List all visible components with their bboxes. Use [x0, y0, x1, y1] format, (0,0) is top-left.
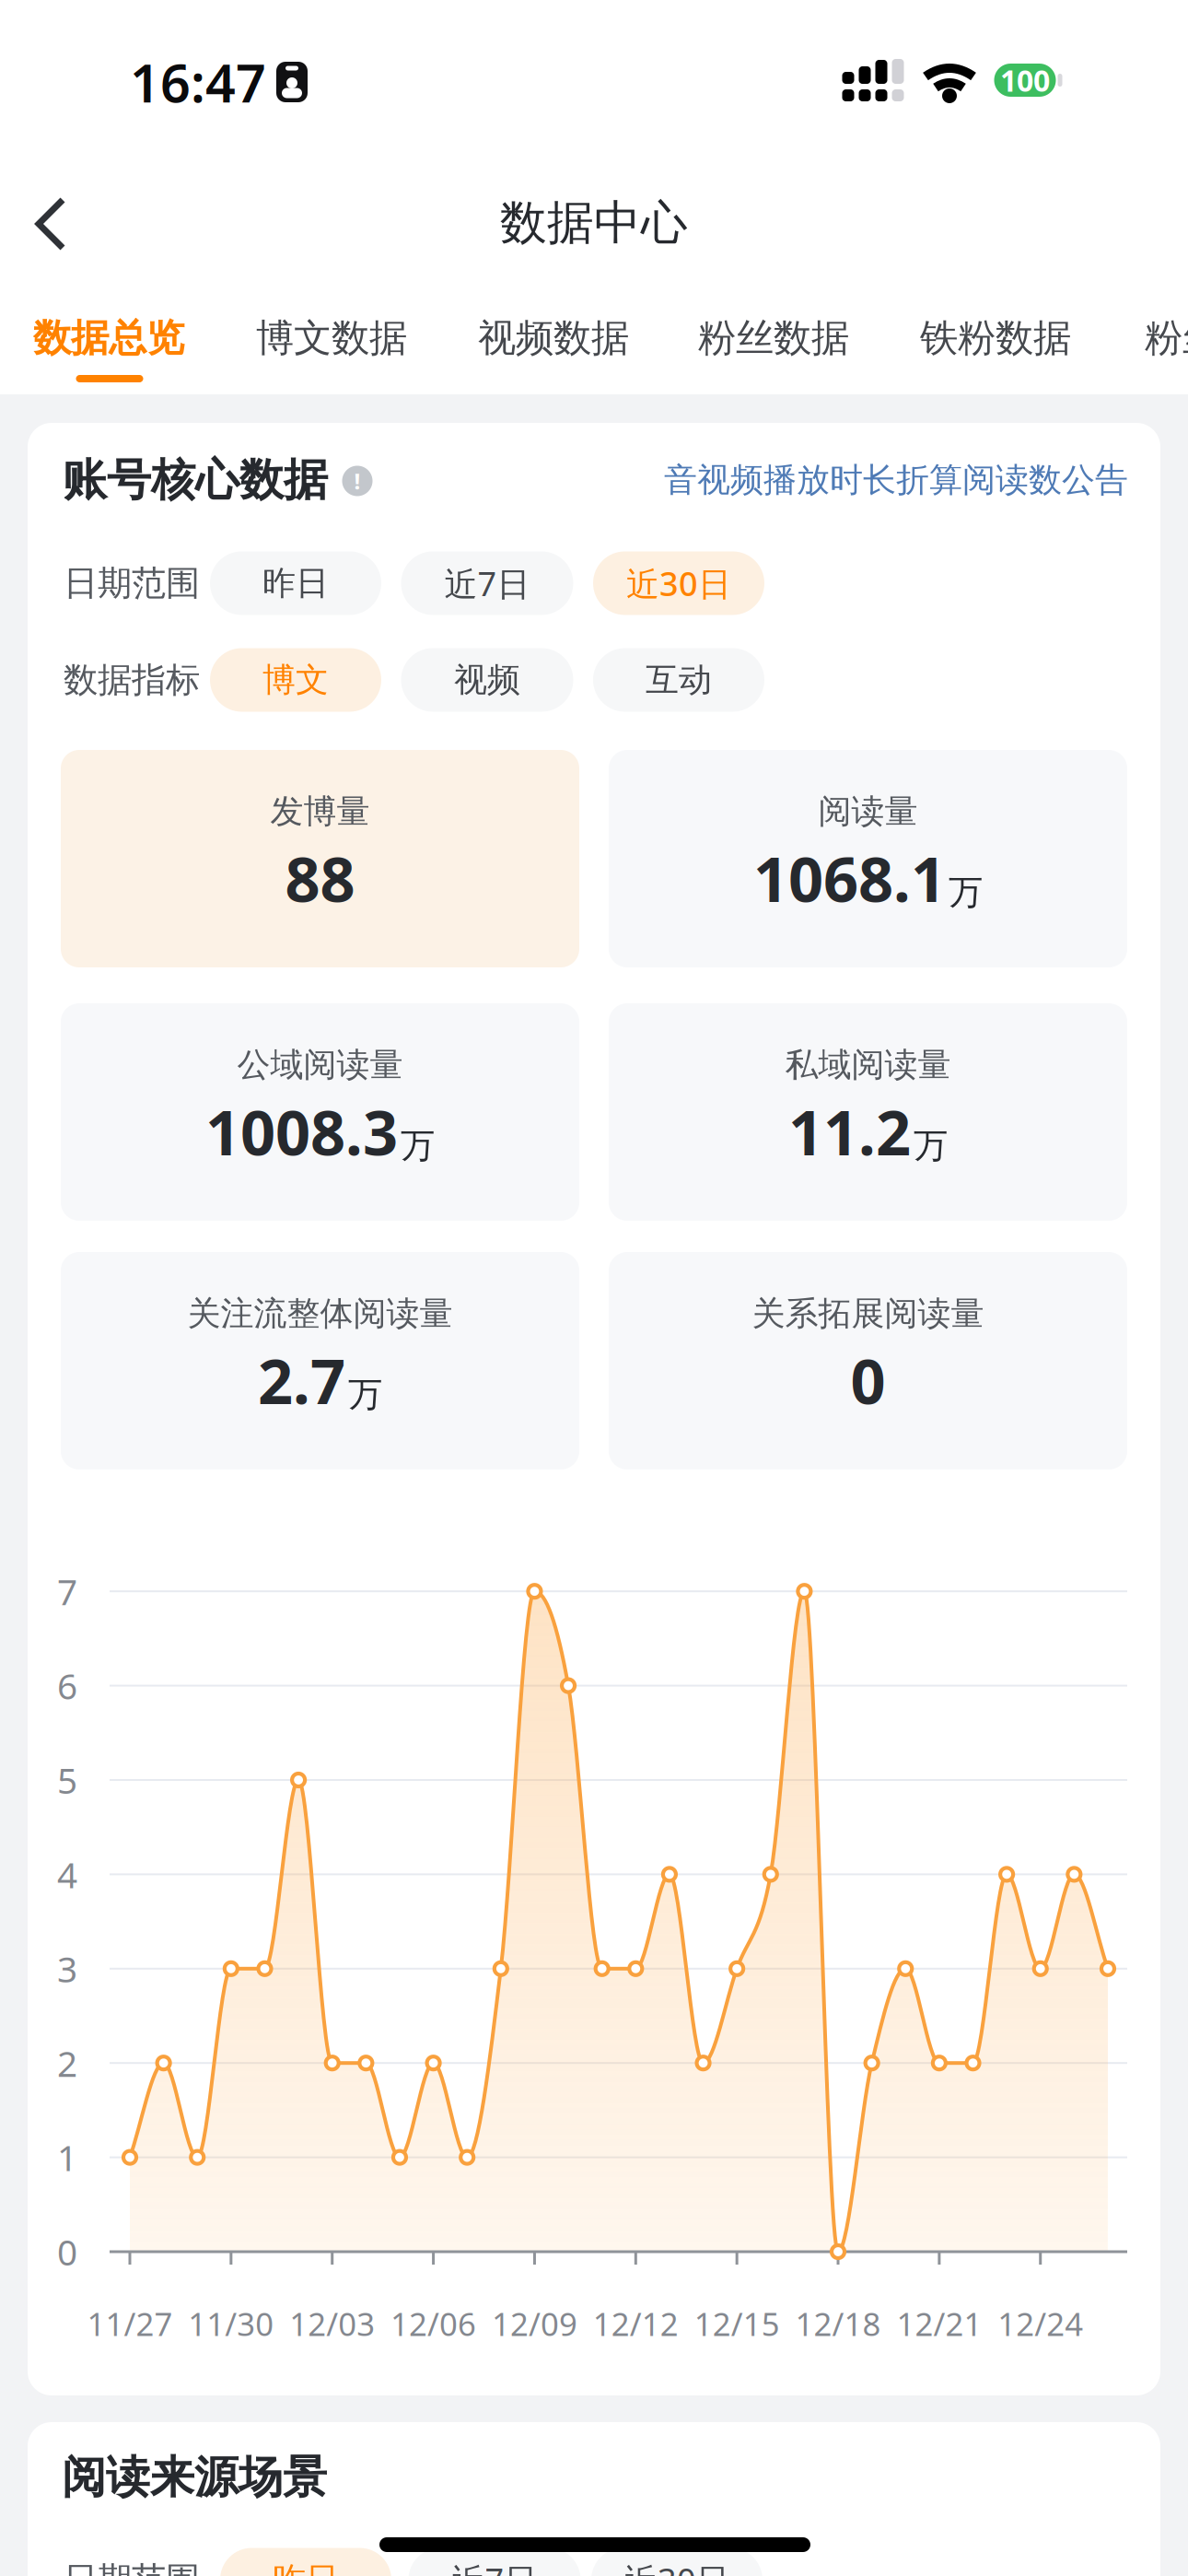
staticText: ! [354, 466, 361, 496]
button[interactable]: 近7日 [408, 2548, 581, 2576]
staticText: 12/15 [694, 2302, 780, 2345]
staticText: 音视频播放时长折算阅读数公告 [664, 460, 1128, 500]
button[interactable]: 粉丝数据 [698, 315, 849, 362]
staticText: 12/06 [391, 2302, 476, 2345]
button[interactable]: 粉丝特权 [1145, 315, 1188, 362]
button[interactable]: 关注流整体阅读量 [61, 1252, 579, 1469]
staticText: 12/03 [289, 2302, 375, 2345]
staticText: 88 [285, 837, 355, 919]
staticText: 近30日 [626, 561, 731, 605]
button[interactable]: 视频数据 [478, 315, 629, 362]
staticText: 公域阅读量 [237, 1044, 403, 1085]
staticText: 近7日 [444, 561, 530, 605]
button[interactable]: 博文数据 [256, 315, 407, 362]
staticText: 数据中心 [500, 194, 688, 252]
staticText: 1008.3 [205, 1091, 398, 1172]
staticText: 1 [57, 2134, 77, 2181]
staticText: 万 [949, 871, 983, 913]
staticText: 0 [57, 2228, 77, 2275]
staticText: 5 [57, 1756, 77, 1804]
staticText: 2 [57, 2039, 77, 2087]
button[interactable]: 铁粉数据 [920, 315, 1071, 362]
staticText: 近7日 [452, 2558, 537, 2576]
staticText: 关系拓展阅读量 [752, 1293, 984, 1334]
button[interactable]: 音视频播放时长折算阅读数公告 [664, 460, 1128, 500]
staticText: 4 [57, 1851, 77, 1898]
staticText: 私域阅读量 [785, 1044, 951, 1085]
staticText: 12/21 [896, 2302, 982, 2345]
staticText: 昨日 [262, 563, 329, 604]
staticText: 2.7 [258, 1339, 345, 1421]
staticText: 12/24 [998, 2302, 1083, 2345]
staticText: 近30日 [624, 2558, 729, 2576]
button[interactable]: 说明 [342, 466, 373, 496]
staticText: 11/30 [188, 2302, 274, 2345]
staticText: 万 [401, 1124, 435, 1167]
staticText: 博文 [262, 660, 329, 700]
staticText: 0 [850, 1339, 885, 1421]
staticText: 视频数据 [478, 315, 629, 362]
staticText: 铁粉数据 [920, 315, 1071, 362]
staticText: 互动 [646, 660, 712, 700]
button[interactable]: 关系拓展阅读量 [609, 1252, 1127, 1469]
button[interactable]: 昨日 [220, 2548, 391, 2576]
button[interactable]: 近7日 [401, 551, 573, 615]
staticText: 11.2 [788, 1091, 911, 1172]
staticText: 12/09 [492, 2302, 577, 2345]
staticText: 7 [57, 1568, 77, 1615]
staticText: 12/18 [795, 2302, 881, 2345]
button[interactable]: 视频 [401, 648, 573, 712]
button[interactable]: 发博量 [61, 750, 579, 967]
staticText: 日期范围 [64, 562, 200, 604]
button[interactable]: 数据总览 [33, 315, 184, 362]
staticText: 发博量 [270, 791, 370, 832]
button[interactable]: 互动 [593, 648, 764, 712]
staticText: 阅读量 [818, 791, 918, 832]
staticText: 12/12 [593, 2302, 679, 2345]
staticText: 1068.1 [753, 837, 946, 919]
button[interactable]: 返回 [33, 194, 70, 253]
button[interactable]: 近30日 [593, 551, 764, 615]
staticText: 粉丝数据 [698, 315, 849, 362]
staticText: 100 [1000, 61, 1050, 100]
staticText: 日期范围 [64, 2559, 200, 2576]
staticText: 账号核心数据 [63, 453, 328, 507]
staticText: 11/27 [87, 2302, 173, 2345]
staticText: 关注流整体阅读量 [187, 1293, 453, 1334]
staticText: 6 [57, 1662, 77, 1709]
staticText: 视频 [454, 660, 520, 700]
button[interactable]: 昨日 [210, 551, 381, 615]
button[interactable]: 阅读量 [609, 750, 1127, 967]
staticText: 3 [57, 1945, 77, 1992]
staticText: 万 [348, 1373, 382, 1416]
staticText: 万 [914, 1124, 948, 1167]
staticText: 博文数据 [256, 315, 407, 362]
staticText: 数据指标 [64, 659, 200, 701]
button[interactable]: 近30日 [591, 2548, 763, 2576]
staticText: 阅读来源场景 [62, 2450, 327, 2505]
button[interactable]: 博文 [210, 648, 381, 712]
staticText: 数据总览 [33, 315, 184, 362]
staticText: 粉丝特权 [1145, 315, 1188, 362]
button[interactable]: 私域阅读量 [609, 1003, 1127, 1221]
staticText: 昨日 [273, 2559, 339, 2576]
staticText: 16:47 [130, 47, 266, 117]
button[interactable]: 公域阅读量 [61, 1003, 579, 1221]
